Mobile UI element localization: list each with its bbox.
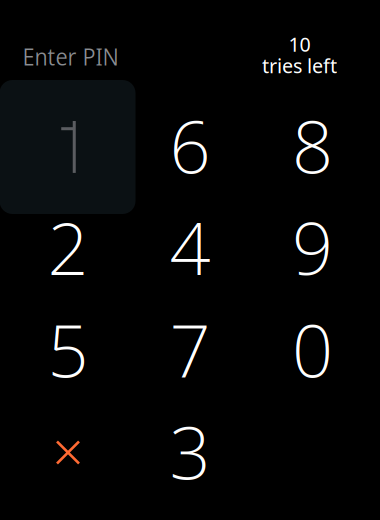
button[interactable]: 7 xyxy=(129,299,251,400)
staticText: 3 xyxy=(169,402,210,501)
button[interactable]: 3 xyxy=(129,401,251,502)
staticText: 6 xyxy=(169,96,210,195)
staticText: 5 xyxy=(47,300,88,399)
button[interactable]: 1 xyxy=(7,96,129,197)
staticText: tries left xyxy=(262,52,337,79)
staticText: 10 xyxy=(288,30,310,58)
staticText: 9 xyxy=(292,198,333,296)
staticText: 7 xyxy=(169,300,210,399)
button[interactable]: 9 xyxy=(251,196,373,297)
button[interactable]: 6 xyxy=(129,95,251,196)
button[interactable]: 2 xyxy=(7,196,129,297)
button[interactable]: 0 xyxy=(251,299,373,400)
button[interactable]: 8 xyxy=(251,95,373,196)
staticText: 2 xyxy=(47,198,88,296)
staticText: 4 xyxy=(169,198,210,296)
button[interactable]: 5 xyxy=(7,299,129,400)
staticText: 0 xyxy=(292,300,333,399)
staticText: 8 xyxy=(292,96,333,195)
button[interactable]: 4 xyxy=(129,196,251,297)
button[interactable]: Delete xyxy=(7,402,129,503)
staticText: Enter PIN xyxy=(22,41,118,72)
